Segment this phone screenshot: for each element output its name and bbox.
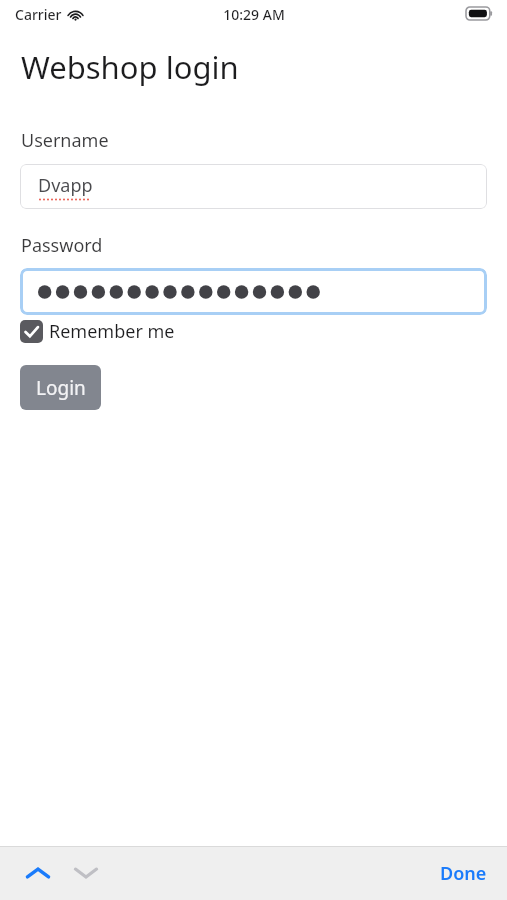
staticText: Username bbox=[21, 128, 109, 153]
button[interactable]: Previous field bbox=[18, 859, 58, 887]
staticText: Password bbox=[21, 233, 103, 258]
button[interactable] bbox=[20, 268, 487, 315]
button[interactable]: Login bbox=[20, 365, 101, 410]
staticText: Login bbox=[36, 375, 86, 401]
button[interactable]: Dvapp bbox=[20, 164, 487, 209]
staticText: Done bbox=[440, 861, 487, 886]
button[interactable]: Done bbox=[434, 855, 493, 892]
staticText: Webshop login bbox=[21, 46, 239, 88]
staticText: 10:29 AM bbox=[223, 5, 285, 24]
staticText: Remember me bbox=[49, 319, 175, 344]
button[interactable]: Next field bbox=[66, 859, 106, 887]
staticText: Dvapp bbox=[38, 173, 93, 198]
button[interactable]: Remember me bbox=[20, 319, 175, 344]
staticText: Carrier bbox=[15, 5, 62, 24]
